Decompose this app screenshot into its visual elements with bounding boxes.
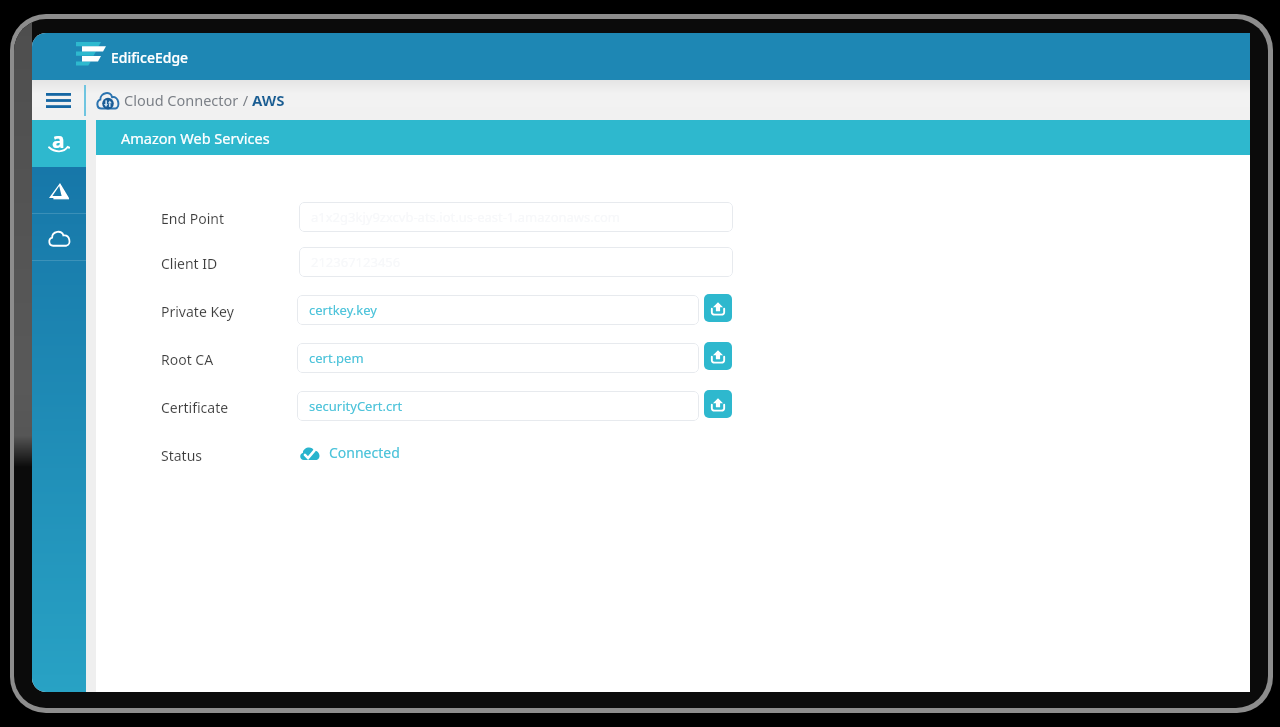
button[interactable]: Menu xyxy=(32,80,84,120)
button[interactable]: securityCert.crt xyxy=(297,391,699,421)
staticText: AWS xyxy=(252,90,285,110)
staticText: Status xyxy=(161,446,203,465)
button[interactable]: cert.pem xyxy=(297,343,699,373)
staticText: Certificate xyxy=(161,398,229,417)
button[interactable]: Cloud provider xyxy=(32,120,86,167)
button[interactable]: Upload file xyxy=(704,294,732,322)
button[interactable]: Cloud provider xyxy=(32,167,86,214)
staticText: EdificeEdge xyxy=(111,48,189,67)
button[interactable]: certkey.key xyxy=(297,295,699,325)
staticText: / xyxy=(239,90,252,110)
staticText: certkey.key xyxy=(309,301,377,319)
staticText: Private Key xyxy=(161,302,234,321)
staticText: Client ID xyxy=(161,254,218,273)
staticText: Connected xyxy=(329,443,400,462)
button[interactable]: 212367123456 xyxy=(299,247,733,277)
staticText: Cloud Connector xyxy=(124,90,239,110)
staticText: Amazon Web Services xyxy=(121,128,270,148)
button[interactable]: Cloud provider xyxy=(32,214,86,261)
staticText: Root CA xyxy=(161,350,214,369)
staticText: End Point xyxy=(161,209,224,228)
staticText: securityCert.crt xyxy=(309,397,403,415)
button[interactable]: Upload file xyxy=(704,390,732,418)
button[interactable]: Upload file xyxy=(704,342,732,370)
staticText: cert.pem xyxy=(309,349,364,367)
staticText: a xyxy=(52,126,65,148)
button[interactable]: a1x2g3kjy9zxcvb-ats.iot.us-east-1.amazon… xyxy=(299,202,733,232)
